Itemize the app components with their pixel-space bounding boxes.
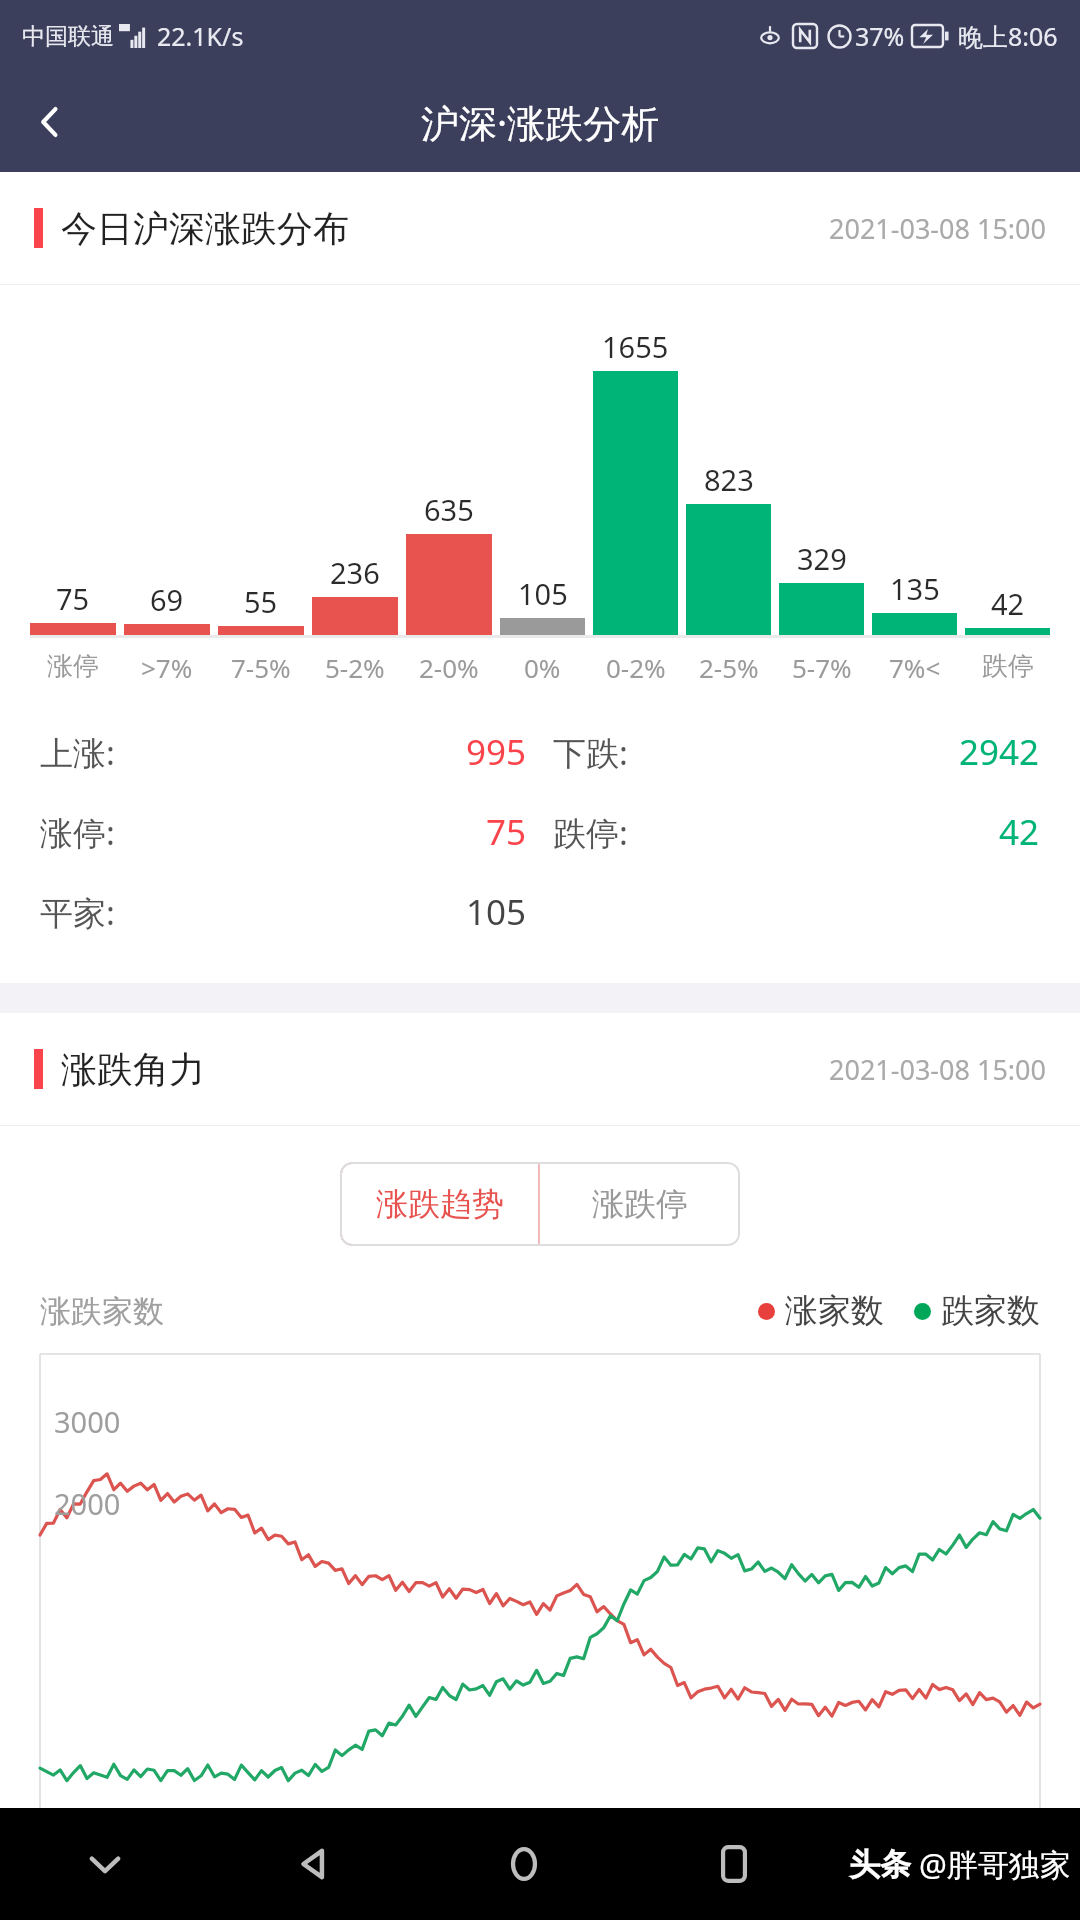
staticText: 2-5% bbox=[699, 650, 759, 685]
staticText: 236 bbox=[330, 553, 380, 592]
staticText: 42 bbox=[991, 584, 1025, 623]
staticText: 2-0% bbox=[419, 650, 479, 685]
staticText: 55 bbox=[244, 582, 278, 621]
staticText: 1655 bbox=[602, 327, 669, 366]
staticText: 3000 bbox=[54, 1402, 121, 1441]
staticText: 跌停 bbox=[982, 650, 1034, 683]
staticText: @胖哥独家 bbox=[919, 1843, 1071, 1885]
button[interactable]: Hide keyboard bbox=[0, 1808, 209, 1920]
staticText: 5-7% bbox=[792, 650, 852, 685]
staticText: 跌家数 bbox=[941, 1290, 1040, 1332]
staticText: 105 bbox=[466, 888, 527, 936]
button[interactable]: 涨跌停 bbox=[540, 1162, 740, 1246]
staticText: 75 bbox=[486, 808, 527, 856]
staticText: 上涨: bbox=[40, 730, 115, 775]
button[interactable]: Back bbox=[209, 1808, 419, 1920]
staticText: 823 bbox=[704, 460, 754, 499]
staticText: 涨停 bbox=[47, 650, 99, 683]
staticText: 135 bbox=[890, 569, 940, 608]
staticText: 5-2% bbox=[325, 650, 385, 685]
staticText: 2000 bbox=[54, 1484, 121, 1523]
staticText: 涨跌趋势 bbox=[376, 1184, 504, 1224]
button[interactable]: Recent apps bbox=[629, 1808, 839, 1920]
staticText: 0-2% bbox=[606, 650, 666, 685]
staticText: 995 bbox=[466, 728, 527, 776]
button[interactable]: 涨跌趋势 bbox=[340, 1162, 540, 1246]
button[interactable]: Back bbox=[14, 86, 86, 158]
staticText: 涨跌家数 bbox=[40, 1292, 164, 1331]
staticText: 中国联通 bbox=[22, 22, 114, 51]
staticText: 涨家数 bbox=[785, 1290, 884, 1332]
staticText: 2021-03-08 15:00 bbox=[829, 210, 1046, 247]
staticText: 晚上8:06 bbox=[958, 19, 1058, 53]
staticText: 今日沪深涨跌分布 bbox=[61, 206, 349, 251]
staticText: 跌停: bbox=[553, 810, 628, 855]
staticText: 7-5% bbox=[231, 650, 291, 685]
button[interactable]: Home bbox=[419, 1808, 629, 1920]
staticText: 涨跌角力 bbox=[61, 1047, 205, 1092]
staticText: 0% bbox=[524, 650, 561, 685]
staticText: 7%< bbox=[889, 650, 941, 685]
staticText: 2021-03-08 15:00 bbox=[829, 1051, 1046, 1088]
staticText: 69 bbox=[150, 580, 184, 619]
staticText: 635 bbox=[424, 490, 474, 529]
staticText: 42 bbox=[999, 808, 1040, 856]
staticText: >7% bbox=[141, 650, 193, 685]
staticText: 沪深·涨跌分析 bbox=[421, 96, 660, 148]
staticText: 75 bbox=[56, 579, 90, 618]
staticText: 22.1K/s bbox=[157, 19, 244, 53]
staticText: 下跌: bbox=[553, 730, 628, 775]
staticText: 涨跌停 bbox=[592, 1184, 688, 1224]
staticText: 头条 bbox=[849, 1845, 911, 1884]
staticText: 105 bbox=[518, 574, 568, 613]
staticText: 2942 bbox=[959, 728, 1040, 776]
staticText: 37% bbox=[855, 19, 905, 53]
staticText: 329 bbox=[797, 539, 847, 578]
staticText: 平家: bbox=[40, 890, 115, 935]
staticText: 涨停: bbox=[40, 810, 115, 855]
